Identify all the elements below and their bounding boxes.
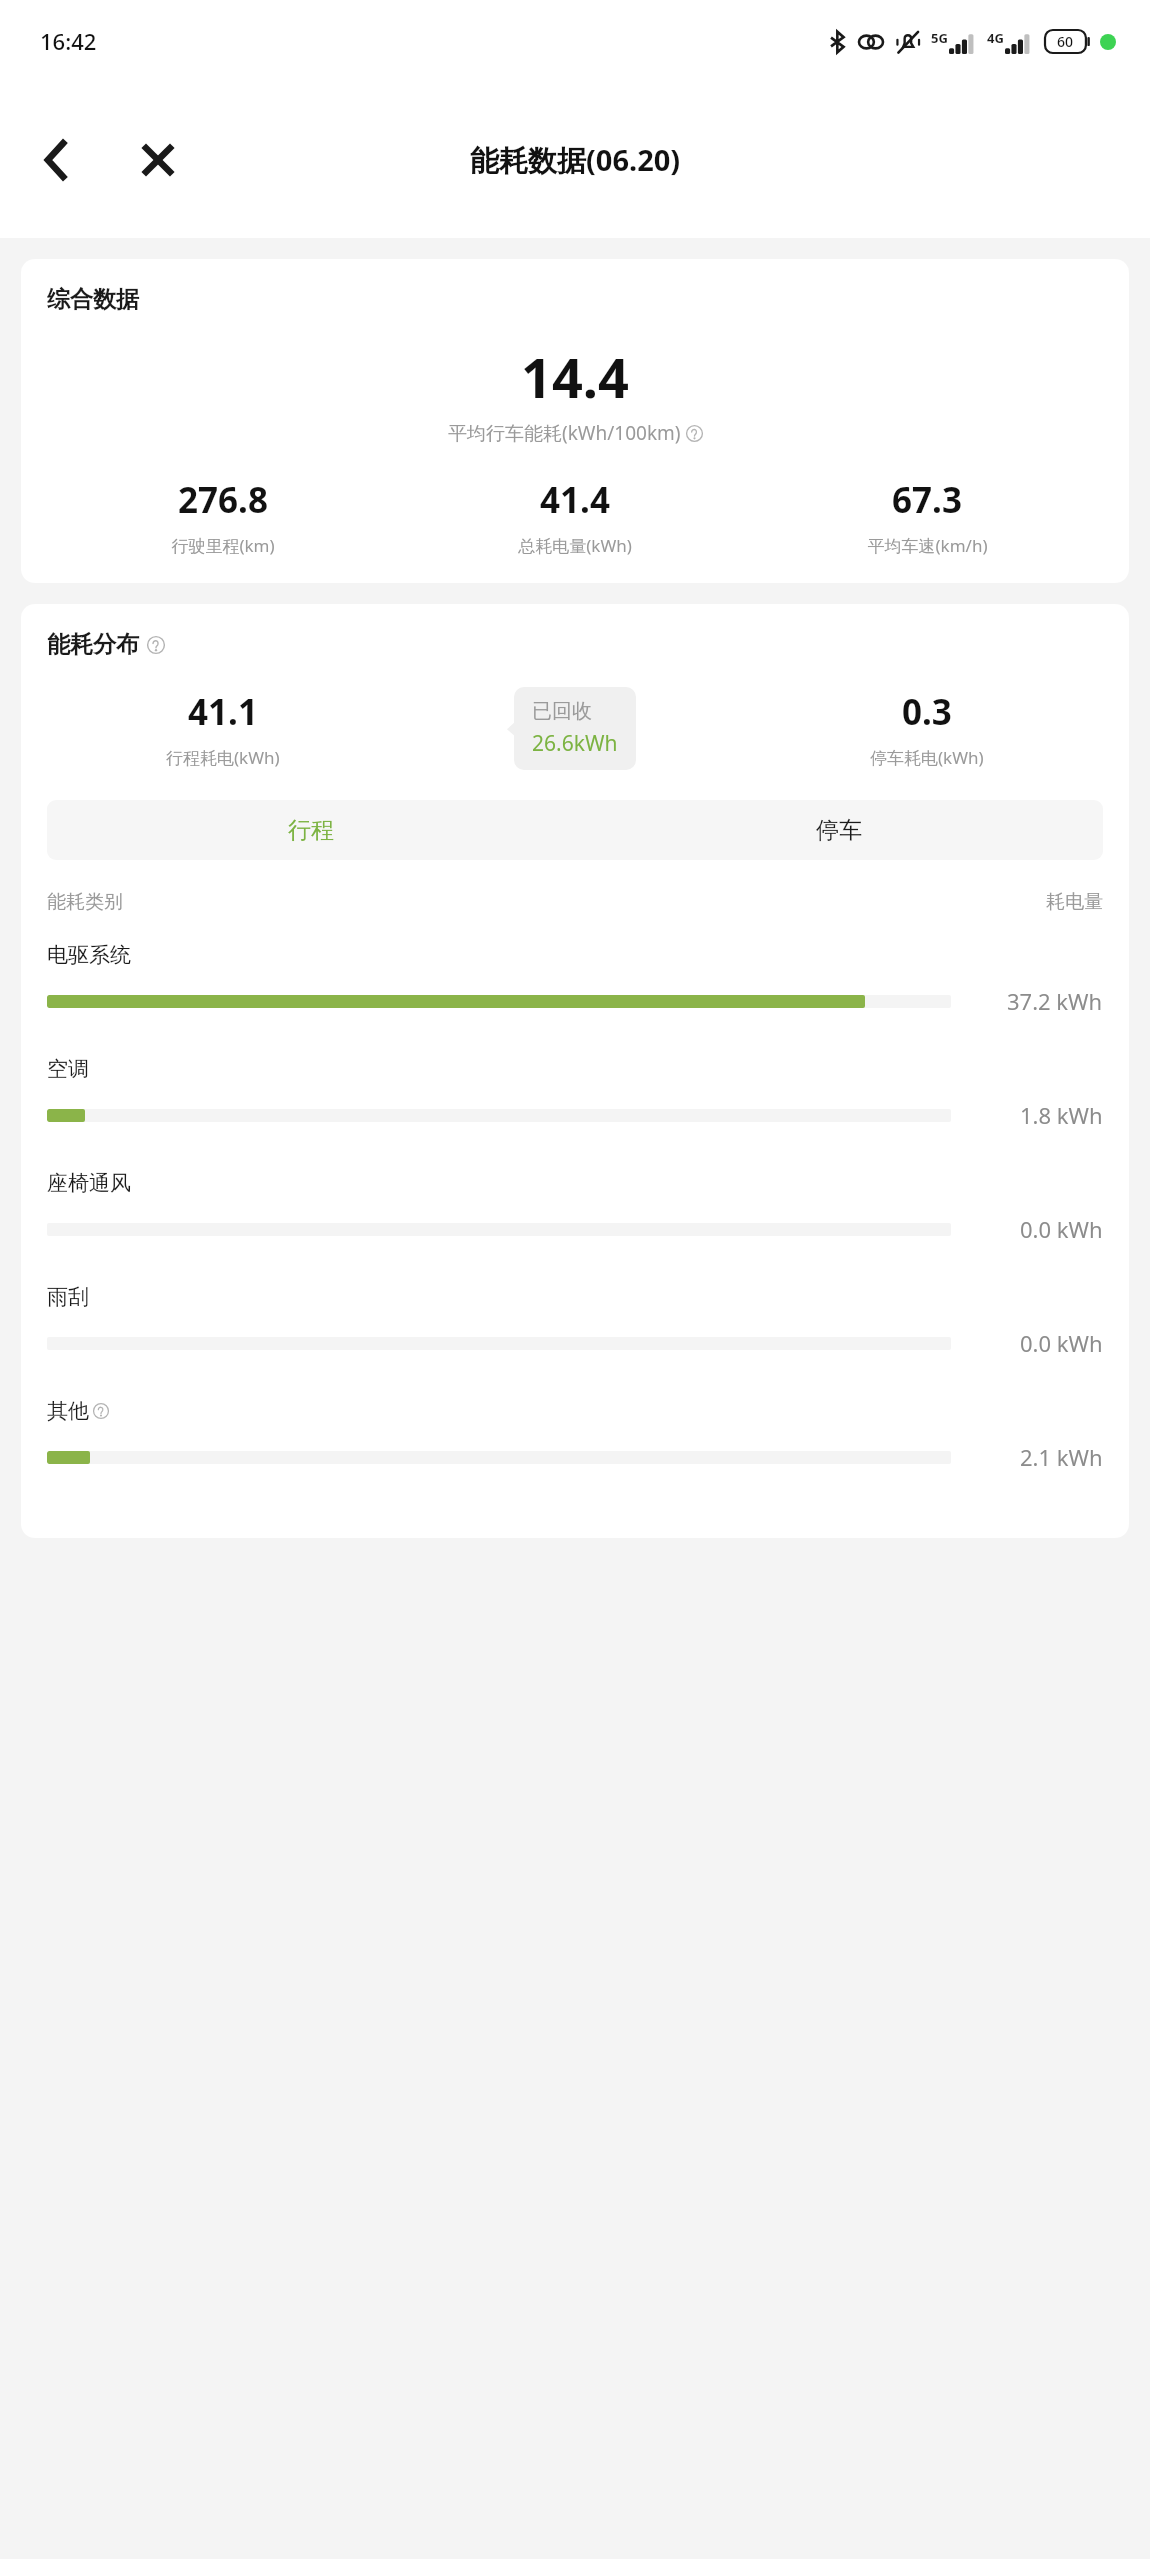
staticText: 0.0 kWh [1020,1214,1103,1244]
button[interactable]: Close [126,128,190,192]
staticText: 2.1 kWh [1020,1442,1103,1472]
staticText: 41.1 [188,688,258,736]
staticText: 能耗类别 [47,890,123,914]
staticText: 平均车速(km/h) [867,534,988,557]
staticText: 4G [987,29,1004,47]
staticText: 能耗分布 [47,630,139,659]
staticText: 0.0 kWh [1020,1328,1103,1358]
staticText: 行程耗电(kWh) [166,746,280,769]
staticText: 行程 [288,816,334,845]
button[interactable]: 行程 [47,800,575,860]
staticText: 停车 [816,816,862,845]
staticText: 26.6kWh [532,729,618,758]
staticText: 16:42 [40,26,97,56]
staticText: 14.4 [47,340,1103,414]
staticText: 37.2 kWh [1007,986,1103,1016]
staticText: 综合数据 [47,285,139,314]
staticText: 能耗数据(06.20) [470,140,681,180]
staticText: 5G [931,29,948,47]
staticText: 雨刮 [47,1284,89,1310]
staticText: 276.8 [178,476,268,524]
staticText: 平均行车能耗(kWh/100km) [448,420,681,446]
staticText: 其他 [47,1398,89,1424]
staticText: 电驱系统 [47,942,131,968]
staticText: 60 [1057,32,1074,51]
staticText: 行驶里程(km) [171,534,275,557]
button[interactable]: 综合数据 [21,259,1129,583]
button[interactable]: 停车 [575,800,1103,860]
staticText: 停车耗电(kWh) [870,746,984,769]
staticText: 67.3 [892,476,962,524]
staticText: 1.8 kWh [1020,1100,1103,1130]
button[interactable]: Back [26,130,86,190]
staticText: 总耗电量(kWh) [518,534,632,557]
staticText: 座椅通风 [47,1170,131,1196]
staticText: 0.3 [902,688,952,736]
staticText: 41.4 [540,476,610,524]
staticText: 空调 [47,1056,89,1082]
staticText: 已回收 [532,699,592,724]
staticText: 耗电量 [1046,890,1103,914]
